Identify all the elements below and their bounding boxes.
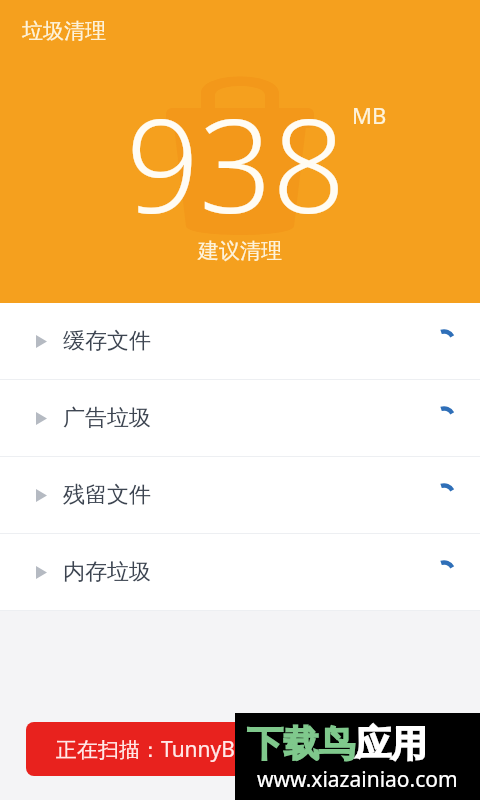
staticText: 垃圾清理 xyxy=(22,18,106,44)
staticText: www.xiazainiao.com xyxy=(257,765,458,794)
other: 扫描中 xyxy=(430,558,458,586)
staticText: 内存垃圾 xyxy=(63,558,151,586)
button[interactable]: 内存垃圾 xyxy=(0,534,480,610)
staticText: 正在扫描：TunnyBrowser xyxy=(56,735,303,764)
staticText: MB xyxy=(352,100,387,130)
button[interactable]: 残留文件 xyxy=(0,457,480,533)
staticText: 下载鸟 xyxy=(247,721,355,766)
staticText: 938 xyxy=(126,76,346,250)
button[interactable]: 广告垃圾 xyxy=(0,380,480,456)
other: 扫描中 xyxy=(430,404,458,432)
staticText: 缓存文件 xyxy=(63,327,151,355)
staticText: 广告垃圾 xyxy=(63,404,151,432)
staticText: 建议清理 xyxy=(0,238,480,264)
button[interactable]: 缓存文件 xyxy=(0,303,480,379)
button[interactable]: 正在扫描：TunnyBrowser xyxy=(26,722,454,776)
staticText: 残留文件 xyxy=(63,481,151,509)
staticText: 应用 xyxy=(355,721,427,766)
other: 扫描中 xyxy=(430,327,458,355)
other: 扫描中 xyxy=(430,481,458,509)
